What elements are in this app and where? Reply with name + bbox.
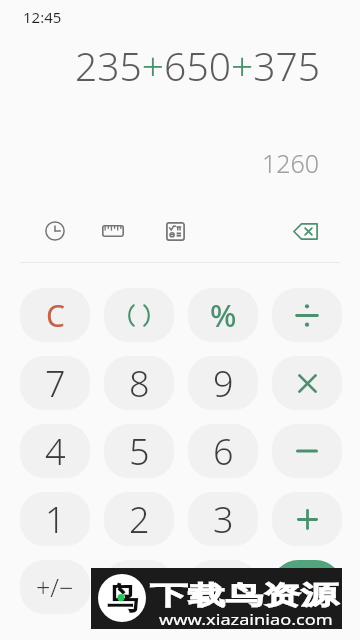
button[interactable]: 1 <box>20 492 90 546</box>
button[interactable]: 6 <box>188 424 258 478</box>
staticText: +/− <box>36 570 74 604</box>
staticText: 0 <box>129 563 150 612</box>
button[interactable]: 7 <box>20 356 90 410</box>
staticText: www.xiazainiao.com <box>159 610 333 629</box>
button[interactable]: 9 <box>188 356 258 410</box>
button[interactable]: History <box>35 211 75 251</box>
button[interactable]: 3 <box>188 492 258 546</box>
staticText: 235+650+375 <box>75 39 320 92</box>
button[interactable]: 4 <box>20 424 90 478</box>
button[interactable]: 8 <box>104 356 174 410</box>
staticText: 5 <box>129 427 150 476</box>
staticText: . <box>219 563 228 612</box>
staticText: 7 <box>45 359 66 408</box>
button[interactable]: Backspace <box>285 211 325 251</box>
button[interactable]: Multiply <box>272 356 342 410</box>
button[interactable]: C <box>20 288 90 342</box>
staticText: C <box>46 295 65 336</box>
staticText: 6 <box>213 427 234 476</box>
button[interactable]: Percent <box>188 288 258 342</box>
button[interactable]: 5 <box>104 424 174 478</box>
staticText: 1260 <box>262 146 320 176</box>
button[interactable]: Scientific calculator <box>155 211 195 251</box>
staticText: 9 <box>213 359 234 408</box>
button[interactable]: Minus <box>272 424 342 478</box>
button[interactable]: 2 <box>104 492 174 546</box>
staticText: 下载鸟资源 <box>150 579 338 612</box>
staticText: 2 <box>129 495 150 544</box>
staticText: 12:45 <box>23 7 62 27</box>
button[interactable]: Parentheses <box>104 288 174 342</box>
staticText: % <box>210 294 237 336</box>
button[interactable]: Decimal point <box>188 560 258 614</box>
staticText: 4 <box>45 427 66 476</box>
button[interactable]: Divide <box>272 288 342 342</box>
staticText: 鸟 <box>107 579 138 618</box>
button[interactable]: Plus <box>272 492 342 546</box>
staticText: 1 <box>45 495 66 544</box>
button[interactable]: Equals <box>272 560 342 614</box>
staticText: 3 <box>213 495 234 544</box>
button[interactable]: Unit converter <box>93 211 133 251</box>
button[interactable]: Plus minus <box>20 560 90 614</box>
button[interactable]: 0 <box>104 560 174 614</box>
staticText: 8 <box>129 359 150 408</box>
